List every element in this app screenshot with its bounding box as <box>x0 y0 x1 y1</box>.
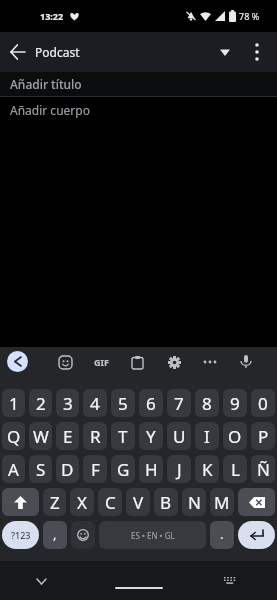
staticText: Ñ <box>257 458 270 481</box>
staticText: S <box>36 458 46 481</box>
button[interactable]: 5 <box>111 389 135 417</box>
button[interactable]: Añadir cuerpo <box>0 97 277 123</box>
staticText: E <box>63 425 73 448</box>
button[interactable]: ES • EN • GL <box>99 521 206 549</box>
button[interactable]: K <box>195 455 219 483</box>
button[interactable]: G <box>111 455 135 483</box>
staticText: 0 <box>258 392 268 415</box>
button[interactable]: E <box>56 422 79 450</box>
button[interactable] <box>237 32 277 72</box>
staticText: 8 <box>202 392 212 415</box>
staticText: V <box>133 491 144 514</box>
button[interactable]: L <box>223 455 247 483</box>
button[interactable] <box>52 349 78 375</box>
button[interactable] <box>218 569 242 593</box>
staticText: 4 <box>90 392 100 415</box>
staticText: 2 <box>36 392 46 415</box>
button[interactable]: U <box>167 422 191 450</box>
button[interactable]: Añadir título <box>0 72 277 96</box>
button[interactable] <box>197 349 223 375</box>
button[interactable] <box>213 32 237 72</box>
button[interactable]: I <box>195 422 219 450</box>
button[interactable]: 1 <box>2 389 25 417</box>
button[interactable] <box>238 488 275 516</box>
button[interactable]: H <box>139 455 163 483</box>
staticText: 13:22 <box>40 10 64 22</box>
staticText: C <box>105 491 116 514</box>
button[interactable]: 8 <box>195 389 219 417</box>
staticText: , <box>53 525 57 543</box>
staticText: W <box>33 425 49 448</box>
staticText: R <box>90 425 101 448</box>
staticText: D <box>61 458 74 481</box>
button[interactable]: O <box>223 422 247 450</box>
button[interactable] <box>124 349 150 375</box>
staticText: Podcast <box>35 44 80 60</box>
staticText: Y <box>146 425 156 448</box>
button[interactable]: Z <box>43 488 66 516</box>
button[interactable]: N <box>182 488 206 516</box>
button[interactable]: . <box>210 521 234 549</box>
button[interactable] <box>0 32 35 72</box>
button[interactable] <box>2 488 39 516</box>
staticText: 7 <box>174 392 184 415</box>
staticText: 3 <box>63 392 73 415</box>
button[interactable]: R <box>83 422 107 450</box>
staticText: 78 % <box>239 10 260 22</box>
button[interactable]: T <box>111 422 135 450</box>
staticText: B <box>160 491 172 514</box>
staticText: U <box>173 425 186 448</box>
button[interactable]: Q <box>2 422 25 450</box>
staticText: Añadir título <box>10 76 82 92</box>
button[interactable]: V <box>126 488 150 516</box>
button[interactable]: Ñ <box>251 455 275 483</box>
button[interactable]: 2 <box>29 389 52 417</box>
button[interactable]: ?123 <box>2 521 39 549</box>
button[interactable] <box>71 521 95 549</box>
staticText: G <box>117 458 130 481</box>
button[interactable]: C <box>98 488 122 516</box>
staticText: 6 <box>146 392 156 415</box>
button[interactable]: 4 <box>83 389 107 417</box>
staticText: I <box>204 425 210 448</box>
staticText: ES • EN • GL <box>131 530 175 541</box>
button[interactable]: J <box>167 455 191 483</box>
staticText: . <box>220 525 224 543</box>
button[interactable]: P <box>251 422 275 450</box>
button[interactable]: GIF <box>88 349 114 375</box>
staticText: P <box>258 425 269 448</box>
button[interactable]: F <box>83 455 107 483</box>
staticText: Z <box>50 491 60 514</box>
button[interactable]: S <box>29 455 52 483</box>
button[interactable]: , <box>43 521 67 549</box>
staticText: F <box>91 458 100 481</box>
button[interactable] <box>7 351 28 372</box>
button[interactable] <box>238 521 275 549</box>
button[interactable] <box>29 569 53 593</box>
staticText: GIF <box>94 356 109 368</box>
staticText: J <box>177 458 182 481</box>
button[interactable]: 9 <box>223 389 247 417</box>
staticText: O <box>228 425 242 448</box>
button[interactable]: W <box>29 422 52 450</box>
button[interactable]: A <box>2 455 25 483</box>
button[interactable] <box>233 349 259 375</box>
button[interactable]: 0 <box>251 389 275 417</box>
staticText: Q <box>7 425 21 448</box>
button[interactable]: 7 <box>167 389 191 417</box>
button[interactable]: B <box>154 488 178 516</box>
button[interactable] <box>161 349 187 375</box>
staticText: 1 <box>9 392 19 415</box>
button[interactable]: 6 <box>139 389 163 417</box>
button[interactable]: 3 <box>56 389 79 417</box>
button[interactable]: Y <box>139 422 163 450</box>
staticText: M <box>214 491 230 514</box>
staticText: H <box>145 458 158 481</box>
staticText: L <box>231 458 240 481</box>
staticText: K <box>202 458 213 481</box>
button[interactable]: D <box>56 455 79 483</box>
staticText: T <box>118 425 128 448</box>
button[interactable]: M <box>210 488 234 516</box>
staticText: A <box>8 458 19 481</box>
button[interactable]: X <box>70 488 94 516</box>
